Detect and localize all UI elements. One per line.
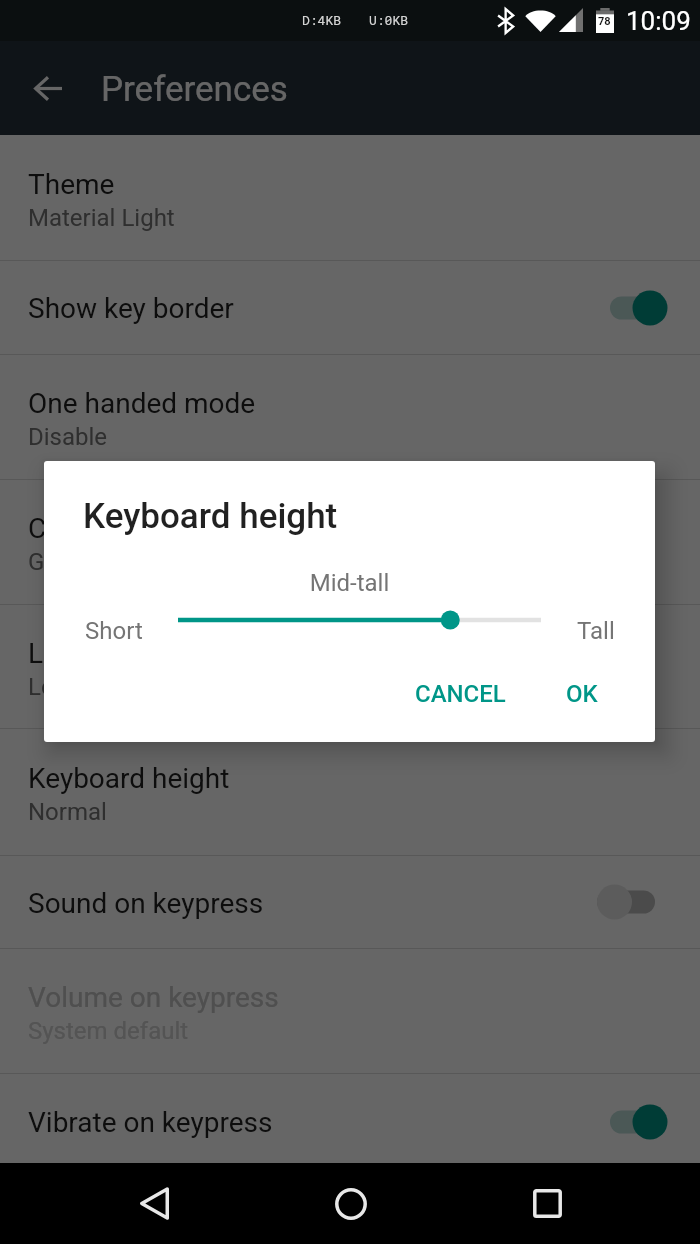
button[interactable]: Sound on keypress (0, 856, 700, 948)
button[interactable]: One handed mode (0, 355, 700, 479)
staticText: Mid-tall (44, 569, 655, 597)
button[interactable]: Theme (0, 135, 700, 260)
staticText: One handed mode (28, 387, 256, 420)
staticText: Vibrate on keypress (28, 1106, 273, 1139)
button[interactable]: Home (311, 1163, 391, 1244)
button[interactable]: Back (114, 1163, 194, 1244)
staticText: D:4KB (302, 11, 342, 28)
staticText: OK (566, 680, 598, 708)
button[interactable]: Show key border (0, 261, 700, 354)
staticText: System default (28, 1017, 189, 1045)
button[interactable]: Recent apps (507, 1163, 587, 1244)
staticText: Preferences (101, 69, 288, 110)
button[interactable]: Navigate up (14, 41, 82, 135)
button[interactable]: Long press timeout (0, 605, 700, 728)
staticText: Show key border (28, 292, 234, 325)
staticText: Long press timeout (28, 637, 269, 670)
button[interactable]: OK (548, 666, 616, 722)
staticText: Keyboard height (83, 496, 338, 537)
staticText: 10:09 (626, 6, 691, 36)
staticText: Candidate font size (28, 512, 269, 545)
staticText: Theme (28, 168, 115, 201)
staticText: Long (28, 673, 82, 701)
button[interactable]: CANCEL (397, 666, 524, 722)
button[interactable]: Volume on keypress (0, 949, 700, 1073)
staticText: Gigantic (28, 548, 117, 576)
staticText: Tall (577, 617, 615, 645)
staticText: Keyboard height (28, 762, 230, 795)
staticText: CANCEL (415, 680, 506, 708)
button[interactable]: Candidate font size (0, 480, 700, 604)
staticText: Sound on keypress (28, 887, 264, 920)
button[interactable]: Vibrate on keypress (0, 1074, 700, 1163)
staticText: 78 (598, 15, 611, 28)
staticText: Normal (28, 798, 107, 826)
staticText: U:0KB (369, 11, 409, 28)
staticText: Disable (28, 423, 108, 451)
button[interactable]: Keyboard height (0, 729, 700, 855)
staticText: Material Light (28, 204, 175, 232)
staticText: Volume on keypress (28, 981, 279, 1014)
staticText: Short (85, 617, 143, 645)
